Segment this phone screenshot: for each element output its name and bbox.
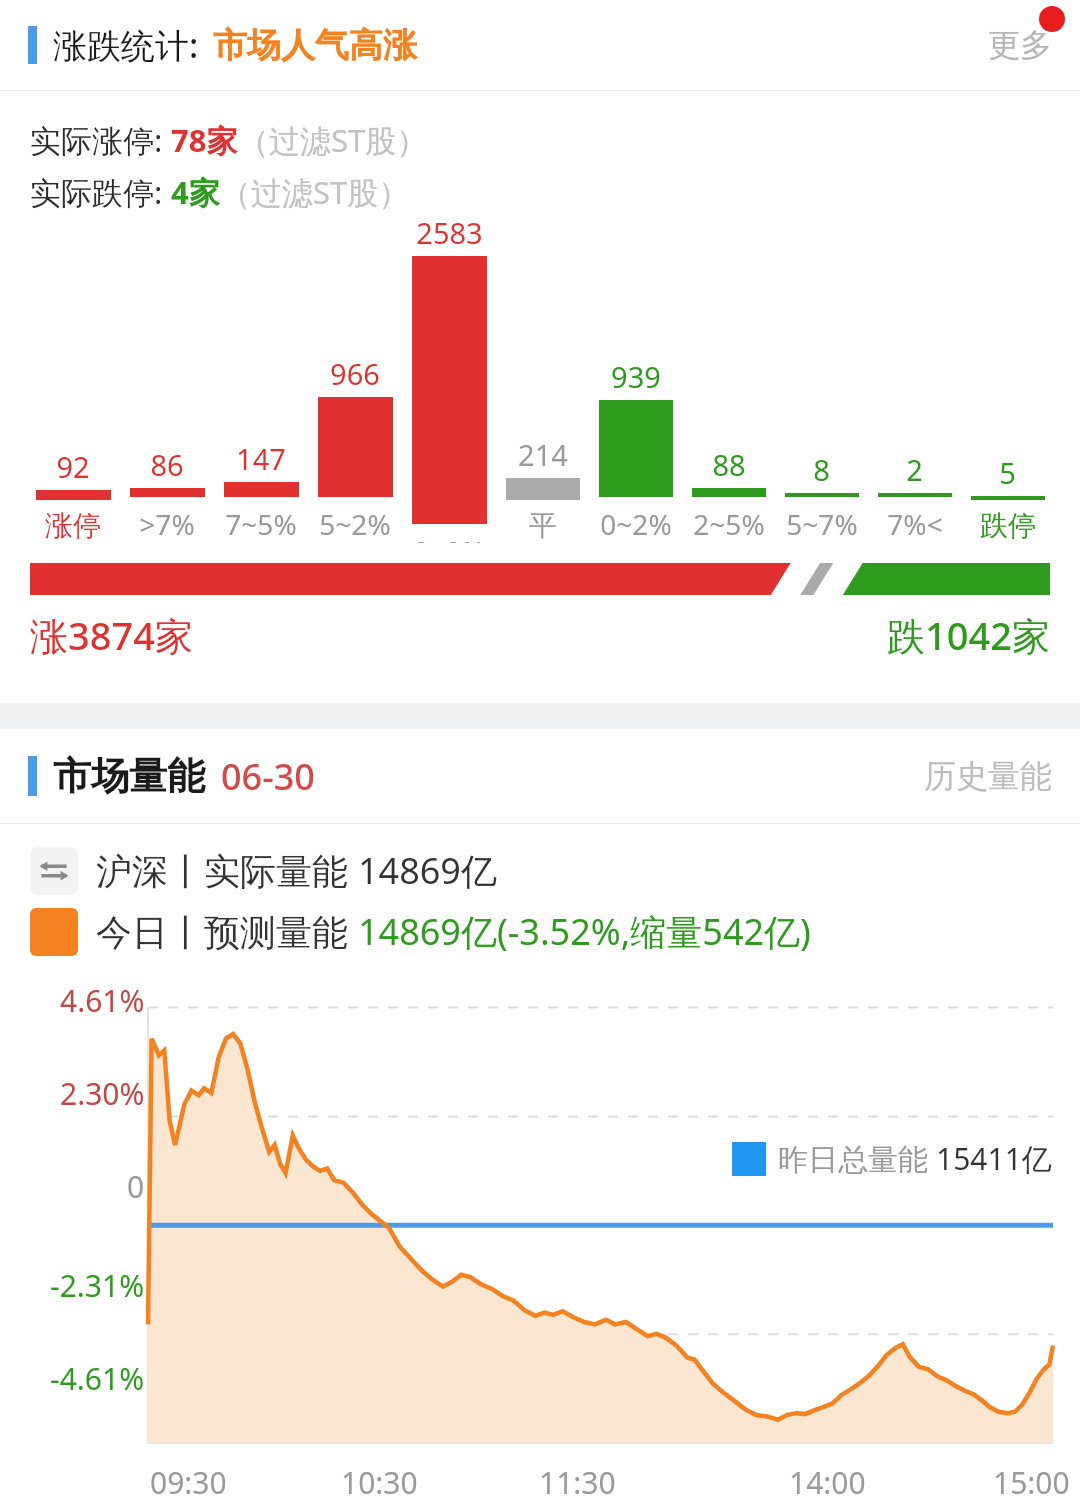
staticText: 2~0% — [413, 532, 485, 543]
staticText: 5~2% — [319, 505, 391, 543]
staticText: 09:30 — [150, 1462, 227, 1503]
button[interactable]: 2 — [868, 450, 961, 543]
staticText: 2 — [906, 450, 923, 489]
button[interactable]: 2583 — [402, 213, 496, 543]
button[interactable]: 5 — [961, 453, 1054, 543]
staticText: 88 — [712, 445, 746, 484]
staticText: 7%< — [887, 505, 943, 543]
staticText: （过滤ST股） — [238, 119, 428, 161]
staticText: 实际涨停: — [30, 119, 171, 161]
staticText: 06-30 — [221, 752, 315, 801]
staticText: 涨跌统计: — [53, 22, 199, 68]
staticText: 92 — [56, 447, 90, 486]
staticText: 涨3874家 — [30, 609, 193, 661]
staticText: 跌1042家 — [887, 609, 1050, 661]
button[interactable]: Switch market — [30, 847, 78, 895]
staticText: 4家 — [171, 171, 220, 213]
button[interactable]: 966 — [308, 354, 402, 543]
staticText: 5 — [999, 453, 1016, 492]
staticText: 939 — [611, 357, 661, 396]
staticText: 2.30% — [60, 1073, 145, 1114]
staticText: 11:30 — [539, 1462, 616, 1503]
staticText: 15:00 — [993, 1462, 1070, 1503]
staticText: 涨停 — [45, 508, 101, 543]
button[interactable]: 939 — [589, 357, 682, 543]
staticText: 10:30 — [341, 1462, 418, 1503]
staticText: 实际跌停: — [30, 171, 171, 213]
staticText: 0 — [127, 1166, 145, 1207]
staticText: 0~2% — [600, 505, 672, 543]
button[interactable]: 92 — [26, 447, 120, 543]
button[interactable]: 214 — [496, 435, 589, 543]
staticText: （过滤ST股） — [220, 171, 410, 213]
button[interactable]: 涨跌统计: — [0, 0, 1080, 90]
staticText: 14:00 — [789, 1462, 866, 1503]
staticText: 历史量能 — [924, 756, 1052, 796]
staticText: >7% — [139, 505, 195, 543]
staticText: 7~5% — [225, 505, 297, 543]
staticText: 14869亿(-3.52%,缩量542亿) — [358, 907, 811, 956]
staticText: 14869亿 — [358, 846, 497, 895]
staticText: 214 — [518, 435, 568, 474]
staticText: 966 — [330, 354, 380, 393]
staticText: 8 — [813, 450, 830, 489]
staticText: 4.61% — [60, 980, 145, 1021]
button[interactable]: 86 — [120, 445, 214, 543]
button[interactable]: 市场量能 — [0, 729, 1080, 823]
staticText: -2.31% — [50, 1265, 145, 1306]
staticText: 市场人气高涨 — [213, 24, 417, 67]
staticText: 昨日总量能 — [778, 1138, 936, 1179]
button[interactable]: 8 — [775, 450, 868, 543]
staticText: 5~7% — [786, 505, 858, 543]
staticText: 更多 — [988, 25, 1052, 65]
staticText: 147 — [236, 439, 286, 478]
staticText: 今日丨预测量能 — [96, 907, 358, 956]
staticText: 2~5% — [693, 505, 765, 543]
staticText: 平 — [529, 508, 557, 543]
button[interactable]: 88 — [682, 445, 775, 543]
button[interactable]: 147 — [214, 439, 308, 543]
staticText: 2583 — [416, 213, 483, 252]
staticText: 沪深丨实际量能 — [96, 846, 358, 895]
staticText: 78家 — [171, 119, 238, 161]
staticText: -4.61% — [50, 1358, 145, 1399]
staticText: 市场量能 — [53, 752, 205, 800]
staticText: 86 — [150, 445, 184, 484]
staticText: 跌停 — [980, 508, 1036, 543]
staticText: 15411亿 — [936, 1138, 1052, 1179]
